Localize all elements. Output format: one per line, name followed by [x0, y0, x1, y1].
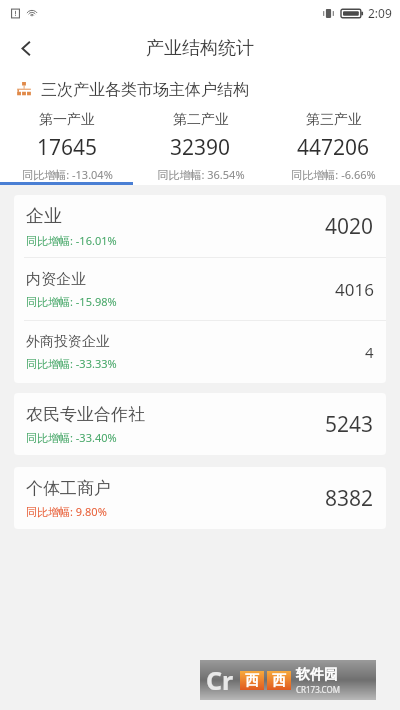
staticText: 第二产业: [173, 111, 229, 129]
staticText: 同比增幅: -13.04%: [22, 167, 113, 182]
staticText: 软件园: [296, 666, 338, 684]
staticText: 4016: [335, 278, 374, 301]
button[interactable]: 企业: [14, 195, 386, 257]
button[interactable]: 第二产业: [134, 110, 267, 182]
staticText: 西: [245, 672, 259, 690]
staticText: CR173.COM: [296, 684, 340, 695]
staticText: 西: [272, 672, 286, 690]
staticText: 同比增幅: -16.01%: [26, 233, 117, 248]
staticText: 同比增幅: -33.40%: [26, 430, 117, 445]
staticText: 外商投资企业: [26, 333, 110, 351]
staticText: 第一产业: [39, 111, 95, 129]
button[interactable]: 个体工商户: [14, 467, 386, 529]
staticText: 同比增幅: 9.80%: [26, 504, 107, 519]
staticText: 三次产业各类市场主体户结构: [41, 80, 249, 100]
button[interactable]: 个体工商户: [14, 467, 386, 529]
staticText: 内资企业: [26, 270, 86, 289]
staticText: 4020: [325, 212, 374, 241]
staticText: 产业结构统计: [146, 37, 254, 60]
staticText: 447206: [297, 133, 370, 162]
staticText: 17645: [37, 133, 98, 162]
staticText: 同比增幅: -15.98%: [26, 294, 117, 309]
staticText: 企业: [26, 205, 62, 228]
staticText: 32390: [170, 133, 231, 162]
button[interactable]: 农民专业合作社: [14, 393, 386, 455]
staticText: 同比增幅: -33.33%: [26, 356, 117, 371]
staticText: 4: [365, 342, 374, 362]
staticText: 同比增幅: -6.66%: [291, 167, 376, 182]
staticText: 5243: [325, 410, 374, 439]
staticText: 农民专业合作社: [26, 404, 145, 425]
staticText: 个体工商户: [26, 478, 111, 499]
staticText: Cr: [206, 663, 234, 697]
button[interactable]: Back: [6, 28, 46, 68]
button[interactable]: 第一产业: [0, 110, 134, 182]
button[interactable]: 外商投资企业: [14, 321, 386, 383]
button[interactable]: 农民专业合作社: [14, 393, 386, 455]
staticText: 8382: [325, 484, 374, 513]
staticText: 同比增幅: 36.54%: [157, 167, 245, 182]
staticText: 2:09: [368, 5, 392, 21]
button[interactable]: 内资企业: [14, 258, 386, 320]
staticText: 第三产业: [306, 111, 362, 129]
button[interactable]: 第三产业: [267, 110, 400, 182]
